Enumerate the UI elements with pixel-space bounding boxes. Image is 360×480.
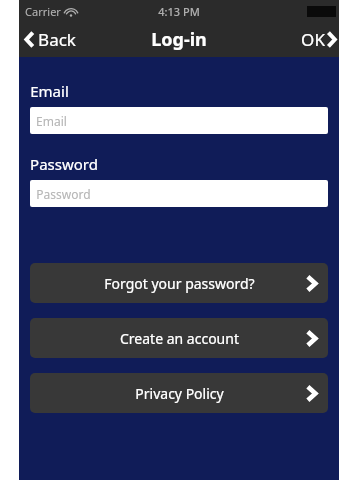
staticText: Email <box>30 81 69 101</box>
button[interactable]: OK <box>293 22 339 57</box>
button[interactable]: Forgot your password? <box>30 263 328 303</box>
staticText: Password <box>36 186 91 202</box>
staticText: Back <box>38 28 76 51</box>
staticText: Carrier <box>25 4 61 19</box>
staticText: Log-in <box>151 27 207 52</box>
staticText: Create an account <box>120 329 239 348</box>
button[interactable]: Password <box>30 180 328 207</box>
staticText: OK <box>301 28 325 51</box>
button[interactable]: Privacy Policy <box>30 373 328 413</box>
staticText: Forgot your password? <box>104 274 255 293</box>
staticText: Privacy Policy <box>135 384 224 403</box>
button[interactable]: Create an account <box>30 318 328 358</box>
staticText: 4:13 PM <box>158 4 200 19</box>
staticText: Email <box>36 113 67 129</box>
button[interactable]: Email <box>30 107 328 134</box>
button[interactable]: Back <box>19 22 84 57</box>
staticText: Password <box>30 154 98 174</box>
